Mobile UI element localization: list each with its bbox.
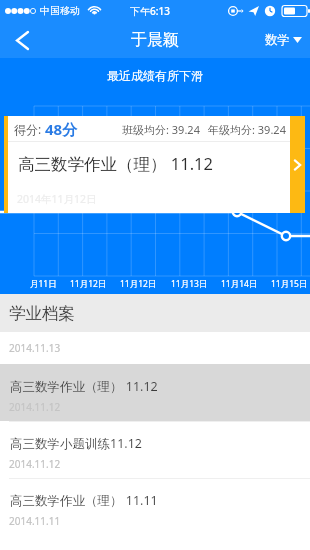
staticText: 高三数学小题训练11.12 [10,435,142,452]
button[interactable]: Back [0,22,44,58]
staticText: 48分 [45,119,78,139]
staticText: 数学 [265,32,290,48]
staticText: 月11日 [30,278,57,290]
staticText: 2014年11月12日 [17,192,97,206]
staticText: 最近成绩有所下滑 [107,68,203,83]
staticText: 11月13日 [171,278,208,290]
button[interactable]: 2014.11.13 [0,332,310,364]
staticText: 高三数学作业（理） 11.12 [18,152,213,175]
other: Open details [290,116,305,213]
staticText: 高三数学作业（理） 11.12 [10,378,158,395]
button[interactable]: 高三数学作业（理） 11.12 [0,364,310,421]
staticText: 2014.11.12 [9,400,61,414]
staticText: 2014.11.11 [9,514,61,528]
button[interactable]: 得分: [4,116,305,213]
staticText: 中国移动 [40,4,80,17]
staticText: 2014.11.13 [9,341,61,355]
staticText: 学业档案 [9,303,75,324]
staticText: 11月14日 [221,278,258,290]
staticText: 11月12日 [120,278,157,290]
button[interactable]: 数学 [257,22,310,58]
staticText: 于晨颖 [131,30,179,50]
staticText: 2014.11.12 [9,457,61,471]
button[interactable]: 高三数学作业（理） 11.11 [0,478,310,535]
staticText: 得分: [14,121,45,137]
button[interactable]: 高三数学小题训练11.12 [0,421,310,478]
staticText: 高三数学作业（理） 11.11 [10,492,158,509]
staticText: 班级均分: 39.24 [122,122,200,137]
staticText: 11月12日 [70,278,107,290]
staticText: 11月15日 [271,278,308,290]
staticText: 年级均分: 39.24 [208,122,286,137]
staticText: 下午6:13 [130,4,170,18]
